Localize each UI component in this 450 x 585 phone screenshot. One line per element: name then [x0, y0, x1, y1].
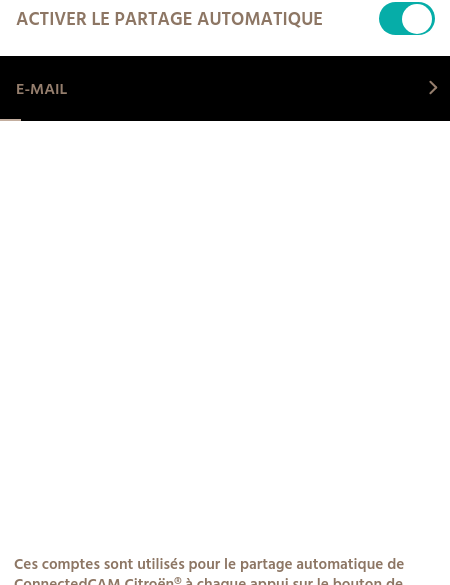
staticText: E-MAIL	[16, 77, 68, 103]
button[interactable]: Activer le partage automatique	[379, 2, 435, 35]
button[interactable]: ACTIVER LE PARTAGE AUTOMATIQUE	[0, 0, 450, 56]
staticText: ACTIVER LE PARTAGE AUTOMATIQUE	[16, 6, 323, 35]
staticText: Ces comptes sont utilisés pour le partag…	[14, 553, 426, 585]
button[interactable]: E-MAIL	[0, 56, 450, 121]
